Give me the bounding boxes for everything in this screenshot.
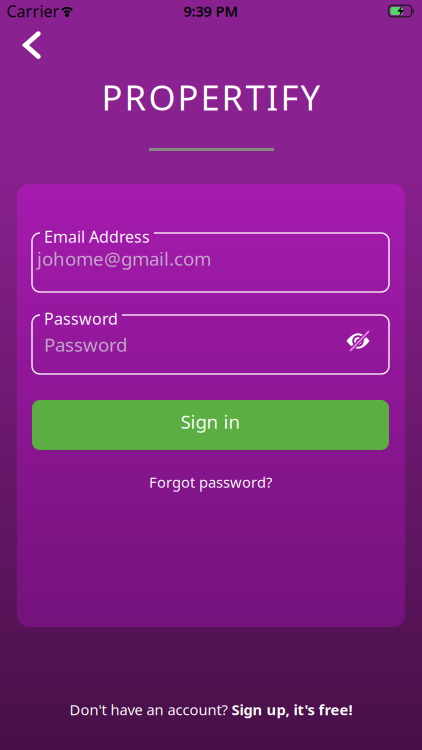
button[interactable]: Forgot password? (149, 472, 272, 492)
staticText: Carrier (6, 0, 59, 22)
staticText: Forgot password? (149, 472, 272, 492)
staticText: Password (44, 332, 127, 357)
button[interactable]: Back (21, 31, 43, 59)
staticText: Email Address (44, 226, 150, 247)
staticText: Don't have an account? Sign up, it's fre… (69, 700, 352, 719)
staticText: johome@gmail.com (37, 246, 211, 271)
staticText: 9:39 PM (183, 1, 238, 21)
staticText: PROPERTIFY (101, 74, 320, 120)
button[interactable]: Show password (346, 334, 370, 355)
staticText: Password (44, 308, 118, 329)
staticText: Sign in (180, 409, 240, 434)
button[interactable]: Don't have an account? Sign up, it's fre… (69, 700, 352, 719)
button[interactable]: Sign in (32, 400, 389, 450)
